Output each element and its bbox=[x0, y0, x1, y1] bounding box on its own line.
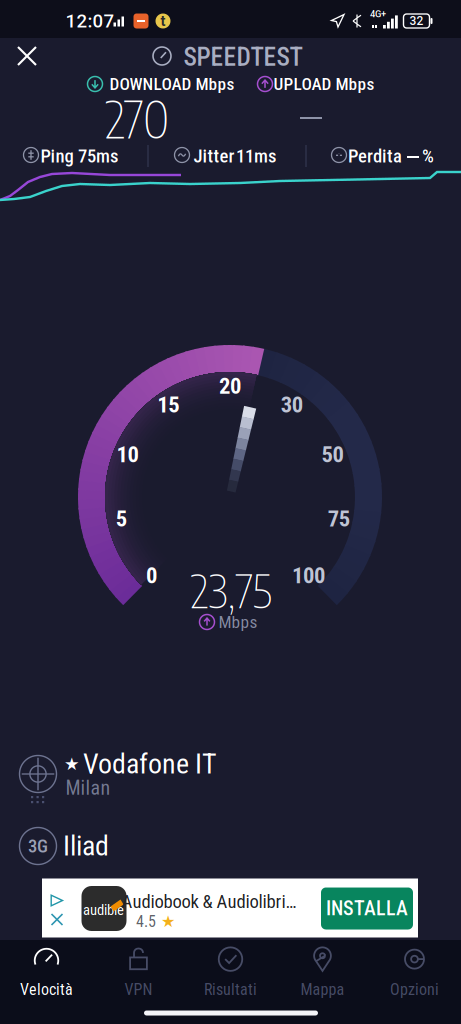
button[interactable]: Velocità bbox=[0, 940, 92, 1004]
button[interactable]: audible bbox=[42, 878, 418, 937]
staticText: ★ bbox=[64, 754, 80, 774]
staticText: 12:07 bbox=[65, 10, 114, 32]
staticText: Milan bbox=[65, 776, 110, 800]
button[interactable]: 3G bbox=[0, 820, 461, 872]
staticText: Mbps bbox=[218, 612, 257, 632]
button[interactable]: Opzioni bbox=[368, 940, 460, 1004]
staticText: 75 bbox=[328, 505, 350, 532]
staticText: ★ bbox=[161, 912, 175, 931]
staticText: 20 bbox=[219, 373, 241, 399]
staticText: Jitter bbox=[193, 145, 234, 167]
button[interactable]: Risultati bbox=[184, 940, 276, 1004]
staticText: % bbox=[422, 145, 434, 167]
staticText: 4.5 bbox=[136, 912, 156, 931]
staticText: audible bbox=[83, 901, 124, 919]
staticText: Audiobook & Audiolibri… bbox=[121, 891, 296, 912]
staticText: VPN bbox=[124, 980, 152, 999]
staticText: 10 bbox=[116, 441, 138, 468]
staticText: Perdita bbox=[348, 145, 402, 167]
staticText: UPLOAD Mbps bbox=[273, 74, 374, 94]
button[interactable]: Mappa bbox=[276, 940, 368, 1004]
staticText: Velocità bbox=[20, 980, 73, 999]
staticText: 3G bbox=[28, 835, 48, 857]
staticText: 75ms bbox=[78, 145, 118, 167]
staticText: 32 bbox=[409, 14, 423, 28]
staticText: 0 bbox=[146, 562, 157, 589]
staticText: Risultati bbox=[204, 980, 257, 999]
staticText: SPEEDTEST bbox=[183, 42, 302, 72]
staticText: Vodafone IT bbox=[83, 748, 217, 780]
staticText: Iliad bbox=[63, 830, 109, 862]
staticText: 270 bbox=[105, 86, 169, 150]
staticText: 4G+ bbox=[370, 8, 386, 19]
staticText: t bbox=[160, 12, 165, 30]
staticText: 30 bbox=[281, 391, 303, 418]
staticText: Mappa bbox=[300, 980, 344, 999]
staticText: 11ms bbox=[236, 145, 276, 167]
staticText: 15 bbox=[157, 391, 179, 418]
staticText: DOWNLOAD Mbps bbox=[109, 74, 234, 94]
staticText: 23,75 bbox=[190, 562, 271, 618]
staticText: 50 bbox=[322, 441, 344, 468]
button[interactable]: ★ bbox=[0, 742, 461, 806]
button[interactable]: Close bbox=[0, 34, 54, 78]
staticText: 5 bbox=[116, 505, 127, 532]
staticText: Opzioni bbox=[390, 980, 439, 999]
staticText: Ping bbox=[40, 145, 73, 167]
staticText: INSTALLA bbox=[326, 897, 408, 920]
button[interactable]: VPN bbox=[92, 940, 184, 1004]
staticText: 100 bbox=[292, 562, 325, 589]
